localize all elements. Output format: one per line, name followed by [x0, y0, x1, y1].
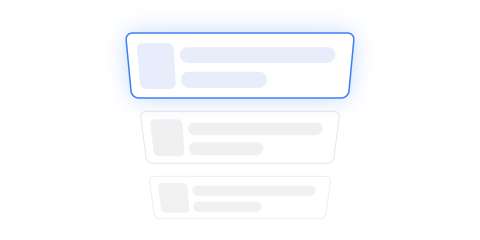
button[interactable]: Selected list item — [0, 0, 480, 240]
button[interactable]: List item — [0, 0, 480, 240]
button[interactable]: List item — [0, 0, 480, 240]
